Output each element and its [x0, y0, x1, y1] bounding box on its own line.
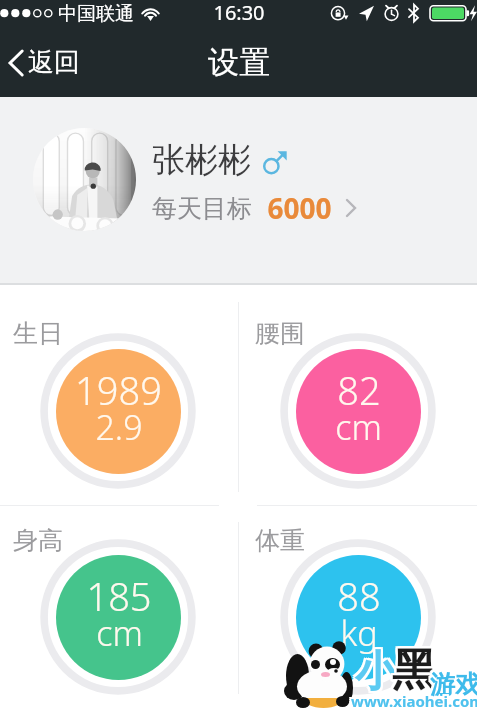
staticText: 游戏: [430, 667, 477, 698]
staticText: 小: [353, 644, 395, 697]
staticText: 游戏: [432, 667, 477, 698]
staticText: 黑: [394, 643, 438, 698]
staticText: www.xiaohei.com: [351, 693, 477, 710]
staticText: 185: [86, 570, 152, 622]
staticText: www.xiaohei.com: [351, 689, 477, 709]
staticText: 黑: [394, 641, 438, 696]
staticText: 游戏: [432, 671, 477, 702]
staticText: 小: [355, 646, 397, 699]
button[interactable]: [239, 505, 477, 710]
staticText: 小: [357, 648, 399, 701]
staticText: www.xiaohei.com: [351, 691, 477, 710]
staticText: 小: [355, 644, 397, 697]
staticText: 黑: [392, 645, 436, 700]
staticText: 6000: [267, 189, 332, 227]
button[interactable]: [0, 505, 239, 710]
button[interactable]: [239, 285, 477, 505]
staticText: 黑: [392, 643, 436, 698]
staticText: 黑: [390, 645, 434, 700]
staticText: 中国联通: [58, 2, 134, 26]
staticText: 1989: [75, 364, 162, 416]
button[interactable]: [0, 285, 239, 505]
staticText: www.xiaohei.com: [349, 693, 477, 710]
staticText: 小: [353, 646, 395, 699]
staticText: www.xiaohei.com: [349, 691, 477, 710]
staticText: www.xiaohei.com: [349, 689, 477, 709]
staticText: 游戏: [428, 669, 477, 700]
staticText: 设置: [208, 43, 270, 82]
staticText: 每天目标: [152, 193, 252, 224]
staticText: 2.9: [95, 404, 143, 450]
staticText: 小: [353, 648, 395, 701]
staticText: 小: [357, 646, 399, 699]
staticText: 游戏: [428, 671, 477, 702]
staticText: 16:30: [213, 0, 265, 26]
staticText: 游戏: [430, 671, 477, 702]
staticText: 生日: [13, 318, 63, 349]
staticText: 返回: [28, 46, 80, 79]
staticText: 黑: [394, 645, 438, 700]
staticText: www.xiaohei.com: [353, 693, 477, 710]
staticText: 游戏: [430, 669, 477, 700]
staticText: 游戏: [432, 669, 477, 700]
staticText: cm: [335, 404, 382, 450]
button[interactable]: 返回: [0, 38, 94, 87]
staticText: 88: [337, 570, 381, 622]
other: Male: [262, 149, 288, 175]
staticText: 黑: [390, 643, 434, 698]
staticText: 小: [357, 644, 399, 697]
staticText: www.xiaohei.com: [353, 691, 477, 710]
button[interactable]: 张彬彬: [0, 97, 477, 285]
staticText: www.xiaohei.com: [353, 689, 477, 709]
staticText: cm: [96, 610, 143, 656]
staticText: 小: [355, 648, 397, 701]
staticText: 黑: [392, 641, 436, 696]
staticText: 张彬彬: [152, 139, 251, 181]
staticText: 身高: [13, 525, 63, 556]
staticText: 腰围: [255, 318, 305, 349]
staticText: 体重: [255, 525, 305, 556]
staticText: 82: [337, 364, 381, 416]
staticText: 游戏: [428, 667, 477, 698]
staticText: kg: [340, 610, 378, 656]
staticText: 黑: [390, 641, 434, 696]
